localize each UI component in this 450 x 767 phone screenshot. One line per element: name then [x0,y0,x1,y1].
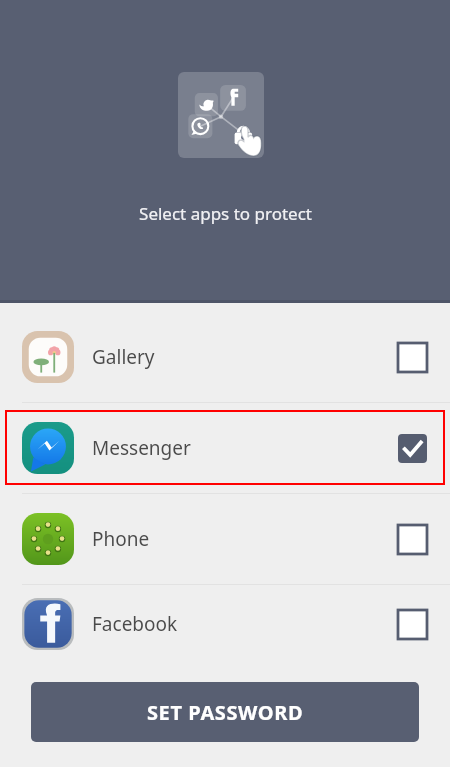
button[interactable]: Messenger [0,403,450,493]
button[interactable]: SET PASSWORD [31,682,419,742]
staticText: SET PASSWORD [147,699,304,726]
button[interactable]: Not selected [396,523,428,555]
button[interactable]: Not selected [396,608,428,640]
button[interactable]: Gallery [0,312,450,402]
staticText: Select apps to protect [139,202,312,225]
staticText: Facebook [92,611,178,637]
staticText: Gallery [92,344,155,370]
staticText: Phone [92,526,150,552]
button[interactable]: Phone [0,494,450,584]
staticText: Messenger [92,435,191,461]
button[interactable]: Not selected [396,341,428,373]
button[interactable]: Facebook [0,585,450,663]
button[interactable]: Selected [396,432,428,464]
